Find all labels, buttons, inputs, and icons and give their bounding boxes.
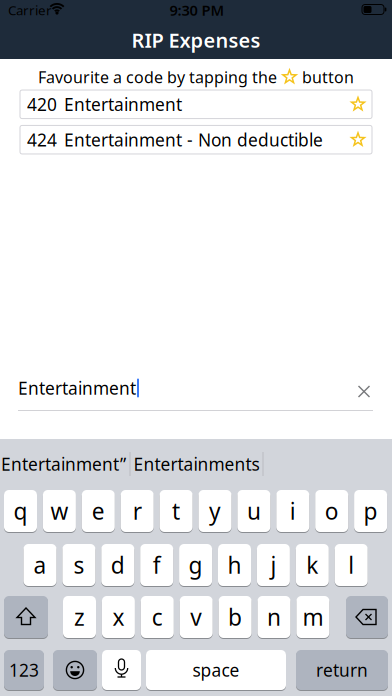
button[interactable]: Search text field [0, 368, 392, 408]
staticText: Entertainment [18, 376, 136, 399]
button[interactable]: Delete [346, 596, 388, 638]
staticText: s [73, 550, 84, 580]
staticText: 420 [27, 93, 57, 116]
button[interactable]: Emoji [53, 650, 97, 690]
button[interactable]: 424 [20, 125, 372, 154]
button[interactable]: return [296, 650, 388, 690]
staticText: y [209, 496, 221, 526]
staticText: Entertainments [133, 452, 259, 475]
staticText: space [192, 658, 239, 681]
staticText: Favourite a code by tapping the [38, 66, 277, 88]
button[interactable]: Dictate [102, 650, 141, 690]
button[interactable]: space [146, 650, 286, 690]
button[interactable]: b [219, 596, 252, 638]
staticText: Entertainment - Non deductible [64, 128, 323, 151]
staticText: w [50, 496, 68, 526]
button[interactable]: Clear text [350, 377, 378, 405]
button[interactable]: 123 [4, 650, 44, 690]
button[interactable]: y [198, 490, 231, 532]
button[interactable]: a [23, 544, 56, 586]
staticText: 123 [9, 658, 39, 681]
button[interactable]: c [141, 596, 174, 638]
staticText: o [325, 496, 339, 526]
button[interactable]: w [43, 490, 76, 532]
button[interactable]: v [180, 596, 213, 638]
staticText: h [227, 550, 241, 580]
button[interactable]: n [257, 596, 290, 638]
staticText: k [306, 550, 318, 580]
button[interactable]: h [218, 544, 251, 586]
staticText: Entertainment [64, 93, 182, 116]
button[interactable]: z [63, 596, 96, 638]
staticText: 9:30 PM [169, 0, 224, 20]
staticText: return [316, 658, 368, 681]
staticText: x [112, 602, 124, 632]
staticText: r [133, 496, 142, 526]
staticText: d [111, 550, 125, 580]
staticText: g [189, 550, 203, 580]
button[interactable]: 420 [20, 90, 372, 118]
staticText: p [364, 496, 378, 526]
button[interactable]: Entertainments [131, 441, 261, 486]
staticText: f [153, 550, 161, 580]
button[interactable]: x [102, 596, 135, 638]
button[interactable]: q [4, 490, 37, 532]
staticText: t [172, 496, 180, 526]
staticText: button [302, 66, 354, 88]
staticText: a [33, 550, 46, 580]
button[interactable]: d [101, 544, 134, 586]
button[interactable]: l [335, 544, 368, 586]
staticText: j [270, 550, 276, 580]
staticText: m [302, 602, 323, 632]
staticText: u [247, 496, 261, 526]
staticText: v [190, 602, 202, 632]
staticText: z [74, 602, 85, 632]
button[interactable]: Entertainment” [0, 441, 129, 486]
staticText: RIP Expenses [131, 27, 260, 53]
button[interactable]: e [82, 490, 115, 532]
staticText: Entertainment” [1, 452, 126, 475]
button[interactable]: k [296, 544, 329, 586]
staticText: c [152, 602, 163, 632]
staticText: 424 [27, 128, 57, 151]
staticText: i [290, 496, 296, 526]
staticText: e [92, 496, 105, 526]
button[interactable]: r [121, 490, 154, 532]
button[interactable]: o [315, 490, 348, 532]
staticText: Carrier [8, 1, 52, 19]
button[interactable]: u [237, 490, 270, 532]
button[interactable]: j [257, 544, 290, 586]
staticText: n [267, 602, 281, 632]
staticText: q [13, 496, 27, 526]
button[interactable]: f [140, 544, 173, 586]
button[interactable]: t [160, 490, 193, 532]
button[interactable]: s [62, 544, 95, 586]
staticText: b [228, 602, 242, 632]
button[interactable]: p [354, 490, 387, 532]
button[interactable]: i [276, 490, 309, 532]
button[interactable]: m [296, 596, 329, 638]
staticText: l [348, 550, 354, 580]
button[interactable]: Shift [4, 596, 48, 638]
button[interactable]: g [179, 544, 212, 586]
